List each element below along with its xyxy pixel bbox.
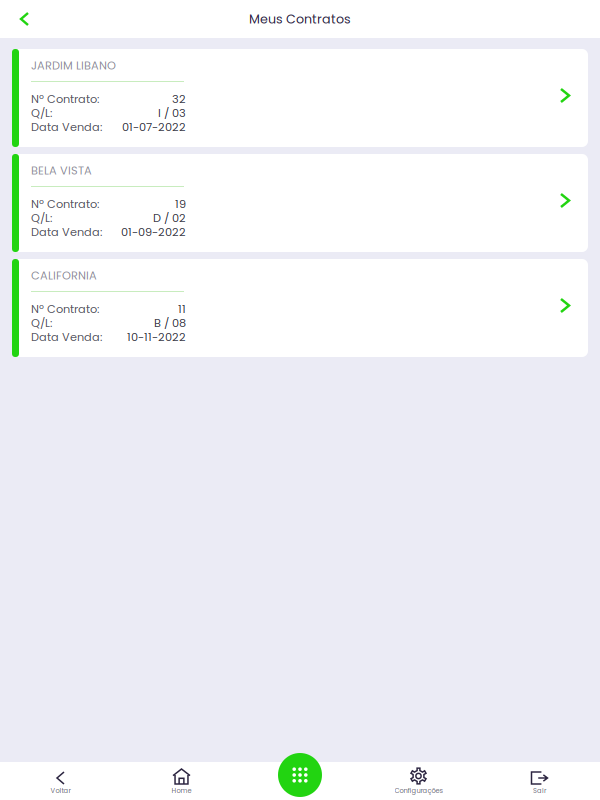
- staticText: Nº Contrato:: [31, 301, 99, 317]
- staticText: Nº Contrato:: [31, 91, 99, 107]
- staticText: 10-11-2022: [127, 329, 186, 345]
- staticText: Voltar: [50, 786, 70, 795]
- staticText: CALIFORNIA: [31, 268, 97, 283]
- staticText: Meus Contratos: [249, 10, 351, 28]
- staticText: Home: [171, 786, 191, 795]
- button[interactable]: Voltar: [0, 762, 121, 800]
- staticText: Data Venda:: [31, 224, 102, 240]
- staticText: Q/L:: [31, 105, 52, 121]
- staticText: I / 03: [158, 105, 186, 121]
- staticText: Sair: [533, 786, 546, 795]
- staticText: 11: [178, 301, 186, 317]
- staticText: Configurações: [394, 786, 442, 795]
- button[interactable]: Voltar: [0, 1, 42, 37]
- staticText: Q/L:: [31, 315, 52, 331]
- button[interactable]: CALIFORNIA: [12, 259, 588, 357]
- staticText: 01-09-2022: [121, 224, 186, 240]
- button[interactable]: BELA VISTA: [12, 154, 588, 252]
- staticText: BELA VISTA: [31, 163, 92, 178]
- staticText: 19: [175, 196, 186, 212]
- button[interactable]: Configurações: [358, 762, 479, 800]
- staticText: Nº Contrato:: [31, 196, 99, 212]
- staticText: Data Venda:: [31, 119, 102, 135]
- staticText: Data Venda:: [31, 329, 102, 345]
- button[interactable]: JARDIM LIBANO: [12, 49, 588, 147]
- staticText: 32: [172, 91, 186, 107]
- button[interactable]: Home: [121, 762, 242, 800]
- staticText: D / 02: [153, 210, 186, 226]
- staticText: 01-07-2022: [122, 119, 186, 135]
- button[interactable]: Menu: [278, 753, 322, 797]
- button[interactable]: Sair: [479, 762, 600, 800]
- staticText: B / 08: [154, 315, 186, 331]
- staticText: JARDIM LIBANO: [31, 58, 116, 73]
- staticText: Q/L:: [31, 210, 52, 226]
